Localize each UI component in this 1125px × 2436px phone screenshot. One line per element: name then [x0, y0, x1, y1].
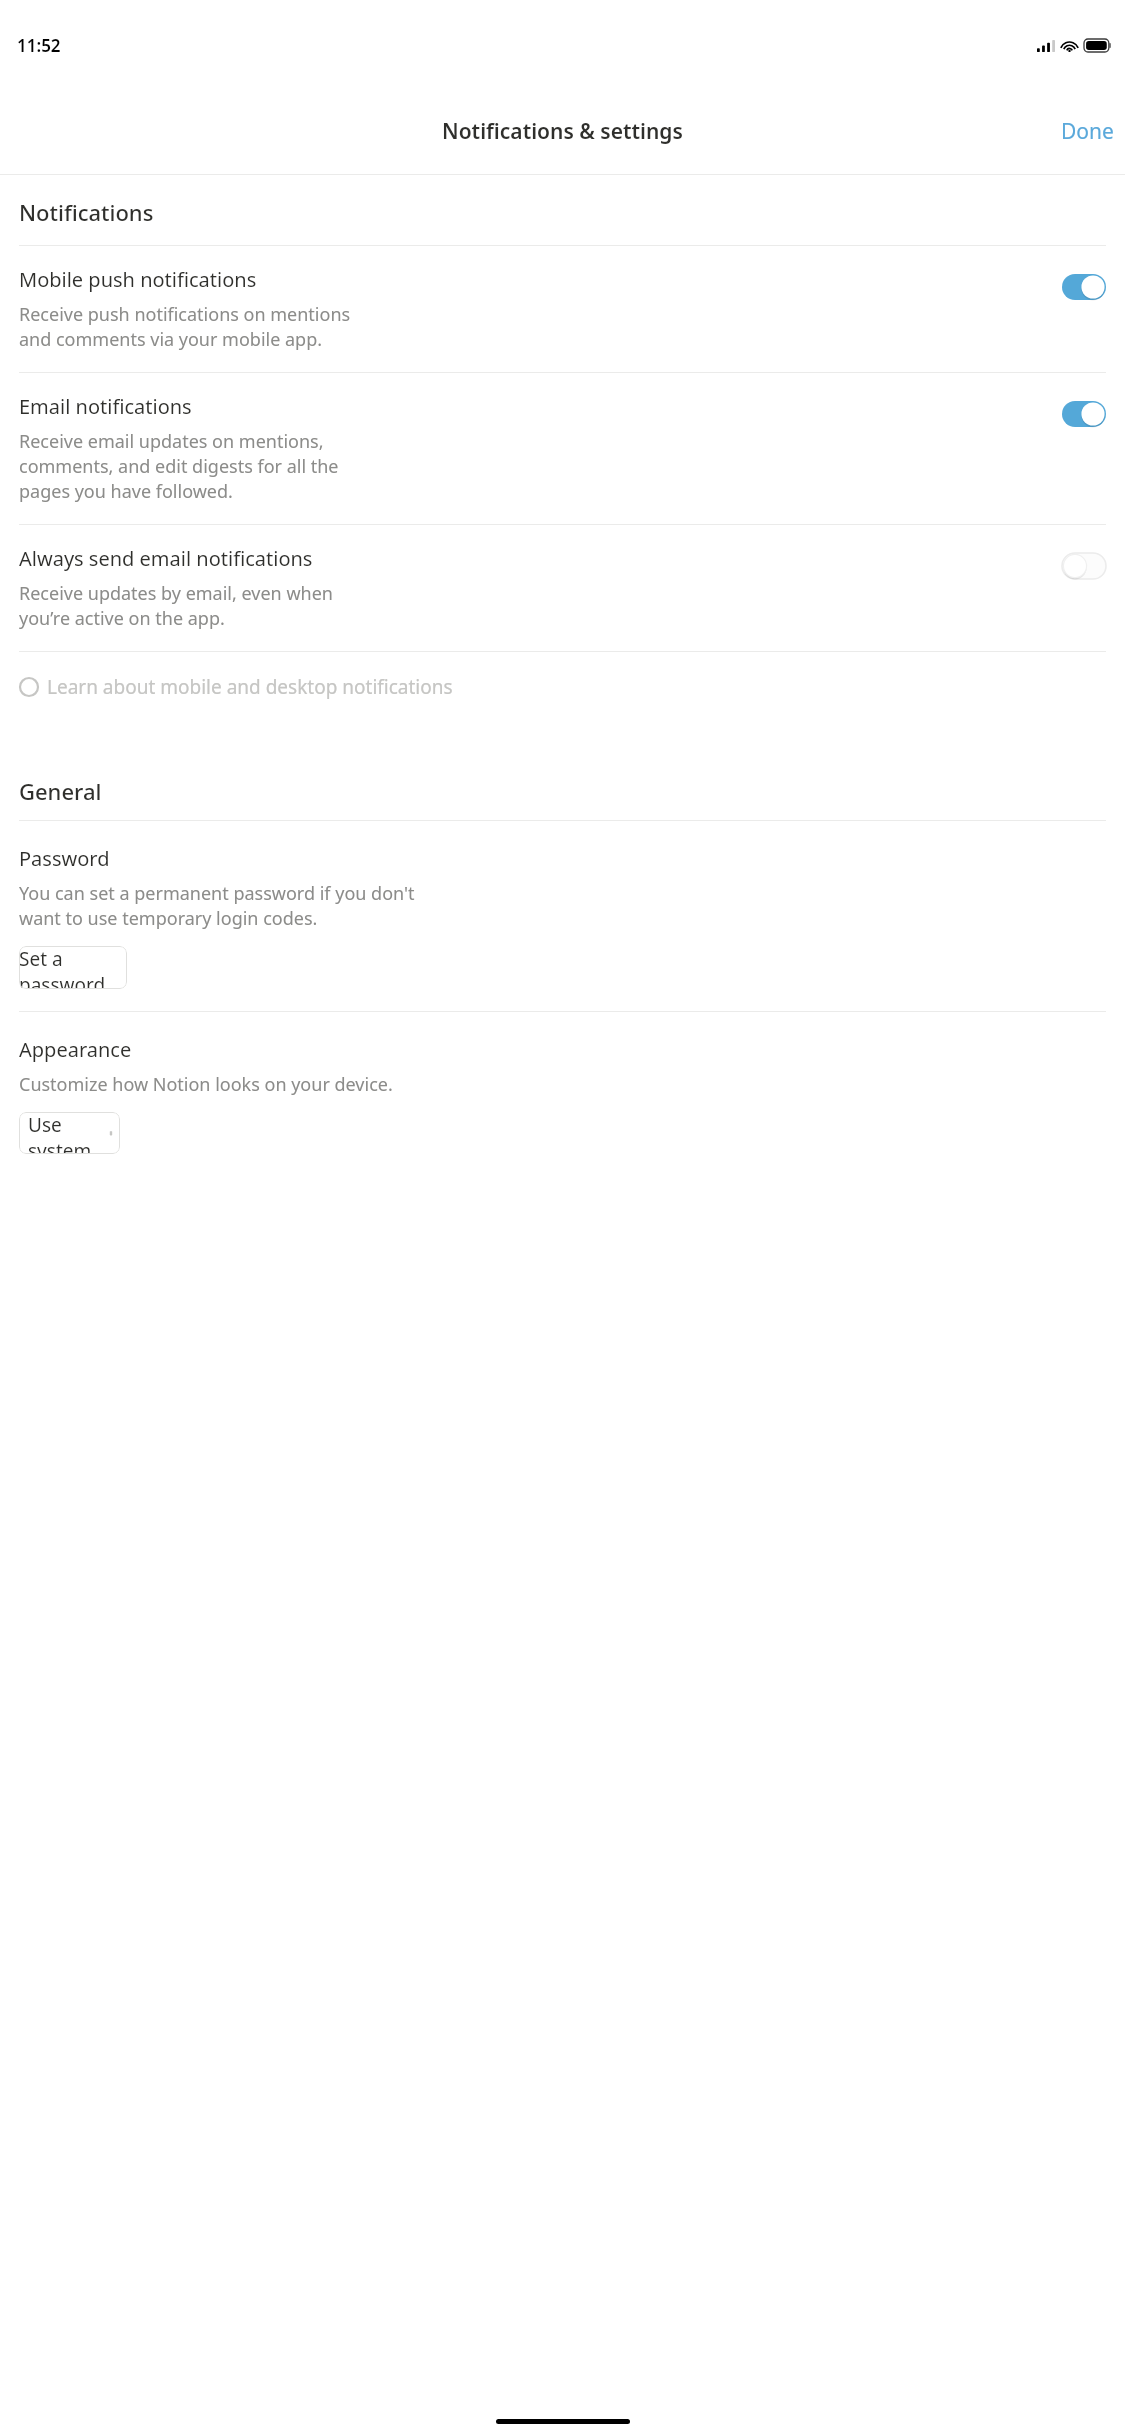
- staticText: Receive updates by email, even when: [19, 581, 333, 606]
- button[interactable]: Learn about mobile and desktop notificat…: [0, 652, 1125, 716]
- staticText: Notifications: [19, 197, 154, 227]
- staticText: General: [19, 776, 102, 806]
- staticText: and comments via your mobile app.: [19, 327, 323, 352]
- staticText: Mobile push notifications: [19, 266, 257, 293]
- button[interactable]: Mobile push notifications: [0, 246, 1125, 372]
- staticText: 11:52: [17, 34, 61, 57]
- staticText: Receive push notifications on mentions: [19, 302, 351, 327]
- button[interactable]: Done: [1050, 109, 1125, 154]
- staticText: Customize how Notion looks on your devic…: [19, 1072, 393, 1097]
- staticText: pages you have followed.: [19, 479, 233, 504]
- button[interactable]: Set a password: [19, 946, 127, 989]
- staticText: Learn about mobile and desktop notificat…: [47, 674, 453, 700]
- staticText: Appearance: [19, 1036, 132, 1063]
- staticText: comments, and edit digests for all the: [19, 454, 339, 479]
- staticText: You can set a permanent password if you …: [19, 881, 415, 906]
- staticText: Set a password: [19, 946, 127, 989]
- staticText: Password: [19, 845, 110, 872]
- staticText: Notifications & settings: [442, 117, 683, 146]
- staticText: Always send email notifications: [19, 545, 313, 572]
- staticText: want to use temporary login codes.: [19, 906, 318, 931]
- button[interactable]: Toggle off: [1062, 553, 1106, 579]
- staticText: you’re active on the app.: [19, 606, 225, 631]
- button[interactable]: Always send email notifications: [0, 525, 1125, 651]
- button[interactable]: Toggle on: [1062, 274, 1106, 300]
- staticText: Email notifications: [19, 393, 192, 420]
- button[interactable]: Toggle on: [1062, 401, 1106, 427]
- button[interactable]: Use system setting: [19, 1112, 120, 1154]
- staticText: Receive email updates on mentions,: [19, 429, 324, 454]
- staticText: Use system setting: [28, 1112, 111, 1154]
- button[interactable]: Email notifications: [0, 373, 1125, 524]
- staticText: Done: [1061, 117, 1114, 146]
